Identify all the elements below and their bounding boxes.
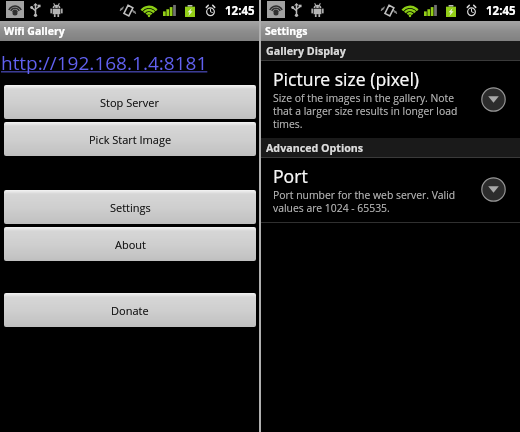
staticText: Advanced Options bbox=[266, 141, 364, 156]
staticText: http://192.168.1.4:8181 bbox=[1, 50, 208, 76]
staticText: Pick Start Image bbox=[89, 132, 172, 147]
staticText: Settings bbox=[110, 200, 151, 215]
staticText: About bbox=[115, 237, 146, 252]
staticText: Port bbox=[273, 164, 308, 188]
staticText: Stop Server bbox=[100, 95, 160, 110]
staticText: Donate bbox=[111, 303, 149, 318]
button[interactable]: Picture size (pixel) bbox=[261, 61, 520, 138]
staticText: Wifi Gallery bbox=[4, 24, 65, 38]
button[interactable]: About bbox=[4, 227, 256, 261]
staticText: Stop Server bbox=[100, 95, 160, 110]
staticText: Settings bbox=[265, 24, 308, 38]
staticText: About bbox=[115, 237, 146, 252]
button[interactable]: Donate bbox=[4, 293, 256, 327]
staticText: Picture size (pixel) bbox=[273, 67, 420, 91]
staticText: Settings bbox=[110, 200, 151, 215]
staticText: 12:45 bbox=[225, 3, 255, 19]
staticText: 12:45 bbox=[486, 3, 516, 19]
button[interactable]: Port bbox=[261, 158, 520, 222]
staticText: Gallery Display bbox=[266, 44, 346, 59]
button[interactable]: Expand bbox=[481, 177, 506, 202]
staticText: Port number for the web server. Valid va… bbox=[273, 188, 456, 215]
button[interactable]: Pick Start Image bbox=[4, 122, 256, 156]
button[interactable]: Settings bbox=[4, 190, 256, 224]
staticText: Pick Start Image bbox=[89, 132, 172, 147]
staticText: Size of the images in the gallery. Note … bbox=[273, 91, 458, 131]
button[interactable]: Stop Server bbox=[4, 85, 256, 119]
staticText: Donate bbox=[111, 303, 149, 318]
button[interactable]: Expand bbox=[481, 87, 506, 112]
